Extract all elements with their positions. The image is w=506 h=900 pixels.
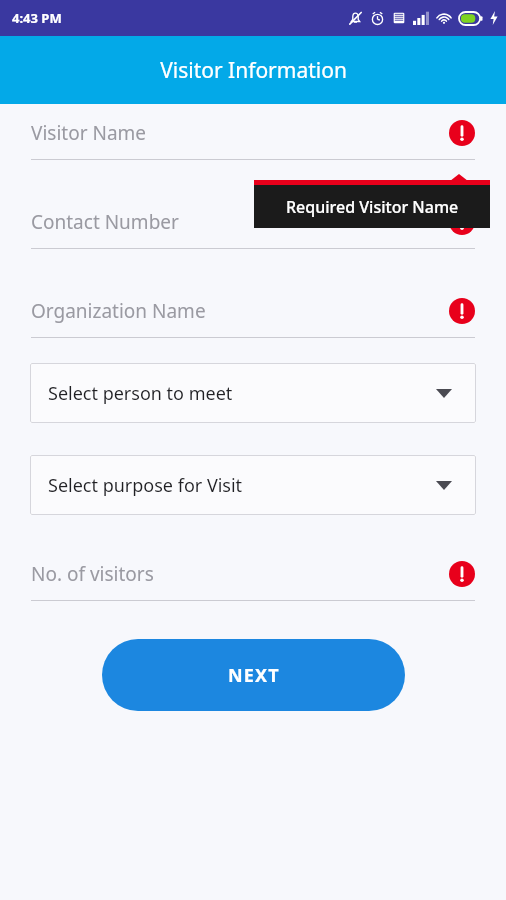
staticText: Visitor Information bbox=[160, 56, 347, 85]
button[interactable]: Select person to meet bbox=[30, 363, 476, 423]
button[interactable]: Organization Name bbox=[31, 298, 475, 338]
button[interactable]: Select purpose for Visit bbox=[30, 455, 476, 515]
staticText: Select purpose for Visit bbox=[48, 473, 243, 498]
other: Error: required field bbox=[449, 120, 475, 146]
staticText: No. of visitors bbox=[31, 561, 449, 587]
button[interactable]: No. of visitors bbox=[31, 561, 475, 601]
button[interactable]: Contact Number bbox=[31, 209, 475, 249]
staticText: NEXT bbox=[228, 663, 280, 688]
button[interactable]: NEXT bbox=[102, 639, 405, 711]
staticText: Required Visitor Name bbox=[286, 196, 459, 218]
other: Error: required field bbox=[449, 209, 475, 235]
staticText: Contact Number bbox=[31, 209, 449, 235]
other: Error: required field bbox=[449, 298, 475, 324]
staticText: Visitor Name bbox=[31, 120, 449, 146]
button[interactable]: Visitor Name bbox=[31, 120, 475, 160]
staticText: 4:43 PM bbox=[12, 9, 62, 27]
staticText: Select person to meet bbox=[48, 381, 233, 406]
other: Error: required field bbox=[449, 561, 475, 587]
staticText: Organization Name bbox=[31, 298, 449, 324]
